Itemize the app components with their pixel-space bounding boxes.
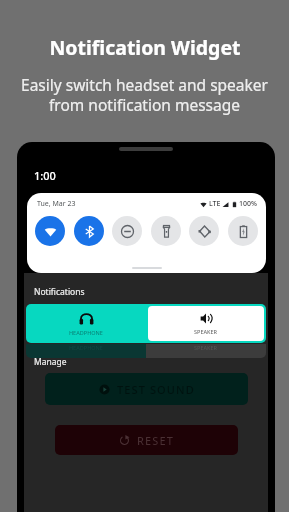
staticText: RESET xyxy=(137,433,174,448)
staticText: Tue, Mar 23 xyxy=(37,199,76,209)
button[interactable]: HEADPHONE xyxy=(26,304,146,343)
button[interactable]: Do not disturb xyxy=(112,216,142,246)
button[interactable]: RESET xyxy=(55,425,238,455)
staticText: 100% xyxy=(239,199,257,209)
staticText: 1:00 xyxy=(34,168,56,183)
button[interactable]: Auto rotate xyxy=(189,216,219,246)
staticText: Manage xyxy=(34,356,67,368)
button[interactable]: Bluetooth xyxy=(74,216,104,246)
staticText: SPEAKER xyxy=(194,344,218,351)
button[interactable]: Wi-Fi xyxy=(35,216,65,246)
staticText: Notifications xyxy=(34,286,85,298)
staticText: HEADPHONE xyxy=(69,329,103,336)
staticText: SPEAKER xyxy=(194,328,218,335)
button[interactable]: Flashlight xyxy=(151,216,181,246)
button[interactable]: Battery saver xyxy=(228,216,258,246)
staticText: Notification Widget xyxy=(49,34,241,61)
staticText: Easily switch headset and speaker from n… xyxy=(21,74,268,116)
staticText: TEST SOUND xyxy=(117,382,195,397)
staticText: HEADPHONE xyxy=(69,344,103,351)
staticText: LTE xyxy=(209,199,221,209)
button[interactable]: SPEAKER xyxy=(148,306,264,341)
